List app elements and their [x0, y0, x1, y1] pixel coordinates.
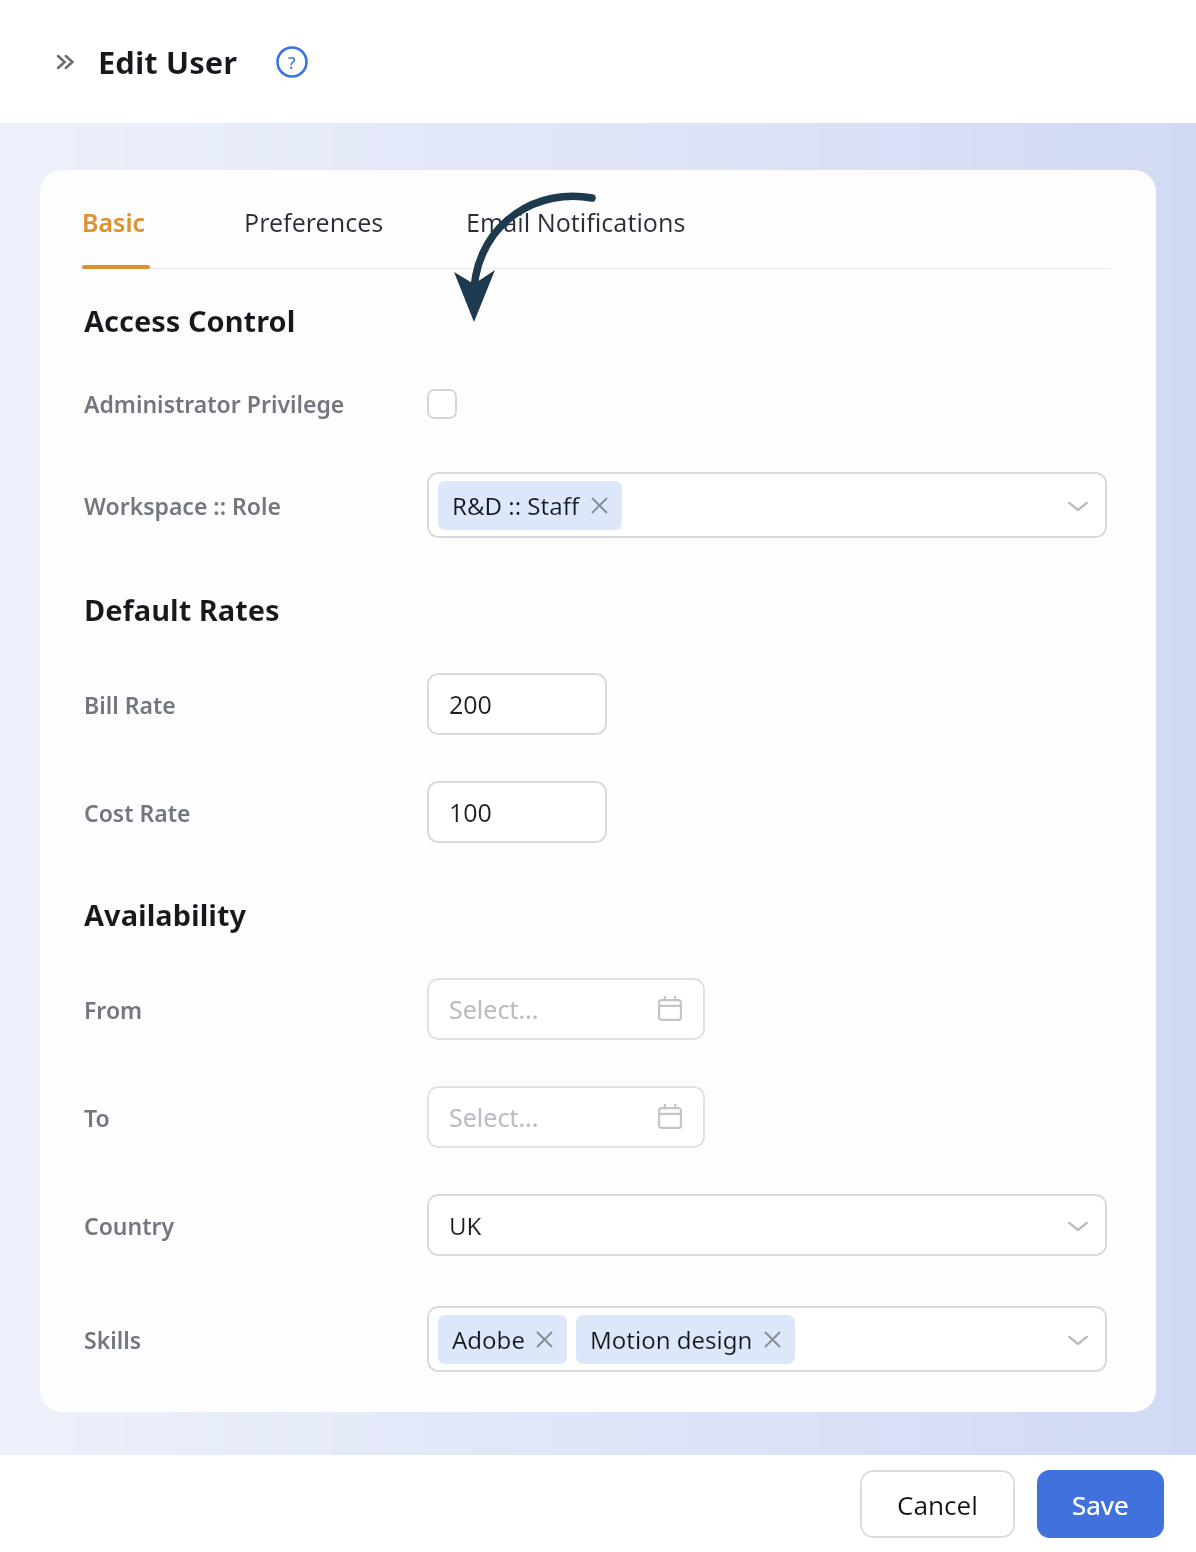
staticText: Save	[1072, 1487, 1129, 1522]
staticText: Basic	[82, 205, 146, 239]
button[interactable]: Help	[272, 42, 312, 82]
staticText: Cost Rate	[84, 797, 191, 828]
button[interactable]: UK	[427, 1194, 1107, 1256]
staticText: Select...	[449, 992, 539, 1026]
staticText: ?	[288, 51, 296, 74]
button[interactable]: Cancel	[860, 1470, 1015, 1538]
button[interactable]: 100	[427, 781, 607, 843]
button[interactable]: 200	[427, 673, 607, 735]
button[interactable]: Email Notifications	[466, 205, 686, 239]
staticText: Bill Rate	[84, 689, 176, 720]
button[interactable]: Basic	[82, 205, 146, 239]
staticText: Select...	[449, 1100, 539, 1134]
staticText: Adobe	[452, 1323, 525, 1356]
staticText: Availability	[84, 895, 247, 934]
staticText: Preferences	[244, 205, 384, 239]
staticText: 200	[449, 687, 492, 721]
staticText: Administrator Privilege	[84, 388, 345, 419]
button[interactable]: Administrator Privilege checkbox	[427, 389, 457, 419]
button[interactable]: Save	[1037, 1470, 1164, 1538]
staticText: Access Control	[84, 301, 296, 340]
staticText: 100	[449, 795, 492, 829]
staticText: Skills	[84, 1324, 142, 1355]
staticText: R&D :: Staff	[452, 489, 580, 522]
button[interactable]: R&D :: Staff	[452, 489, 608, 522]
staticText: Default Rates	[84, 590, 280, 629]
staticText: Edit User	[98, 41, 238, 83]
button[interactable]: Select...	[427, 1086, 705, 1148]
staticText: Email Notifications	[466, 205, 686, 239]
button[interactable]: Adobe	[427, 1306, 1107, 1372]
button[interactable]: Collapse	[48, 43, 86, 81]
staticText: UK	[449, 1209, 482, 1242]
staticText: From	[84, 994, 143, 1025]
button[interactable]: Preferences	[244, 205, 384, 239]
button[interactable]: Motion design	[590, 1323, 781, 1356]
staticText: Country	[84, 1210, 175, 1241]
button[interactable]: Select...	[427, 978, 705, 1040]
staticText: Workspace :: Role	[84, 490, 281, 521]
button[interactable]: Adobe	[452, 1323, 553, 1356]
staticText: To	[84, 1102, 110, 1133]
button[interactable]: R&D :: Staff	[427, 472, 1107, 538]
staticText: Cancel	[897, 1487, 978, 1522]
staticText: Motion design	[590, 1323, 753, 1356]
